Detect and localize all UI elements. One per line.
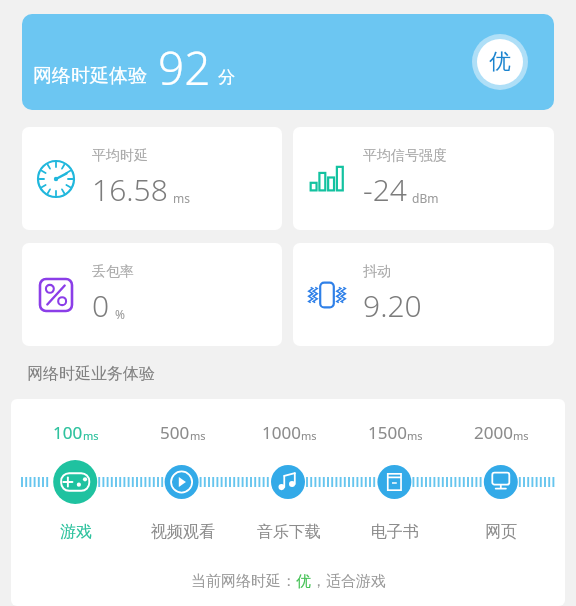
staticText: 网页 [485,522,517,542]
staticText: 音乐下载 [257,522,321,542]
staticText: 优 [489,48,511,76]
staticText: dBm [412,190,439,206]
button[interactable]: 电子书 [342,518,448,546]
button[interactable]: 音乐下载 [236,518,342,546]
staticText: 电子书 [371,522,419,542]
staticText: 0 [92,285,110,326]
staticText: 分 [218,67,235,88]
button[interactable]: 视频观看 [129,518,236,546]
staticText: -24 [363,169,407,210]
staticText: 2000 [474,421,513,444]
button[interactable]: 游戏 [22,518,129,546]
staticText: 丢包率 [92,263,134,281]
staticText: 优 [296,572,311,591]
button[interactable]: 抖动 [293,243,554,346]
button[interactable]: 网页 [448,518,554,546]
staticText: ms [513,428,529,443]
staticText: 1000 [262,421,301,444]
staticText: ms [173,190,190,206]
staticText: 游戏 [60,522,92,542]
staticText: 100 [53,421,83,444]
staticText: 92 [158,36,211,99]
button[interactable]: 平均信号强度 [293,127,554,230]
staticText: 平均时延 [92,147,148,165]
staticText: 网络时延业务体验 [27,364,155,384]
button[interactable]: 网络时延体验 [22,14,554,110]
staticText: ，适合游戏 [311,572,386,591]
button[interactable]: 评级 优 [472,34,528,90]
staticText: ms [407,428,423,443]
staticText: 抖动 [363,263,391,281]
button[interactable]: 平均时延 [22,127,282,230]
staticText: 500 [160,421,190,444]
staticText: % [115,306,125,322]
staticText: 1500 [368,421,407,444]
staticText: 16.58 [92,169,168,210]
staticText: ms [301,428,317,443]
staticText: 视频观看 [151,522,215,542]
button[interactable]: 丢包率 [22,243,282,346]
staticText: 当前网络时延： [191,572,296,591]
staticText: 9.20 [363,285,422,326]
staticText: ms [190,428,206,443]
staticText: 平均信号强度 [363,147,447,165]
staticText: ms [83,428,99,443]
staticText: 网络时延体验 [33,64,147,88]
